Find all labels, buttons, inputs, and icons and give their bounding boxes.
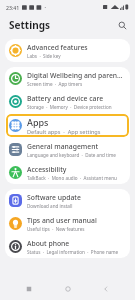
staticText: Battery and device care: [27, 94, 104, 103]
other: ABOUT: [9, 240, 22, 253]
other: UPDATE: [9, 194, 22, 207]
button[interactable]: WELLBEING: [5, 67, 130, 90]
button[interactable]: Home: [58, 279, 78, 299]
staticText: Default apps · App settings: [27, 128, 101, 136]
staticText: Settings: [9, 18, 50, 32]
button[interactable]: APPS: [6, 114, 129, 137]
staticText: Accessibility: [27, 165, 67, 174]
staticText: Software update: [27, 193, 81, 202]
button[interactable]: Recents: [19, 279, 39, 299]
staticText: Apps: [27, 116, 49, 128]
other: BATTERY: [9, 95, 22, 108]
staticText: Storage · Memory · Device protection: [27, 104, 112, 110]
button[interactable]: UPDATE: [5, 189, 130, 212]
staticText: Download and install: [27, 203, 73, 209]
other: ACCESS: [9, 166, 22, 179]
staticText: About phone: [27, 239, 70, 248]
other: GENERAL: [9, 143, 22, 156]
staticText: Language and keyboard · Date and time: [27, 152, 116, 158]
button[interactable]: TIPS: [5, 212, 130, 235]
staticText: Screen time · App timers: [27, 81, 83, 87]
other: APPS: [9, 119, 22, 132]
button[interactable]: ABOUT: [5, 235, 130, 258]
staticText: Status · Legal information · Phone name: [27, 249, 119, 255]
button[interactable]: ACCESS: [5, 161, 130, 184]
staticText: Advanced features: [27, 43, 88, 52]
staticText: Digital Wellbeing and parental controls: [27, 71, 124, 80]
staticText: Tips and user manual: [27, 216, 97, 225]
staticText: Useful tips · New features: [27, 226, 85, 232]
staticText: TalkBack · Mono audio · Assistant menu: [27, 175, 117, 181]
button[interactable]: GENERAL: [5, 138, 130, 161]
staticText: General management: [27, 142, 99, 151]
button[interactable]: GEAR: [5, 39, 130, 62]
other: GEAR: [9, 44, 22, 57]
staticText: Labs · Side key: [27, 53, 61, 59]
other: WELLBEING: [9, 72, 22, 85]
button[interactable]: Back: [96, 279, 116, 299]
button[interactable]: BATTERY: [5, 90, 130, 113]
other: TIPS: [9, 217, 22, 230]
staticText: 23:41: [6, 4, 20, 11]
button[interactable]: Search: [116, 19, 128, 31]
